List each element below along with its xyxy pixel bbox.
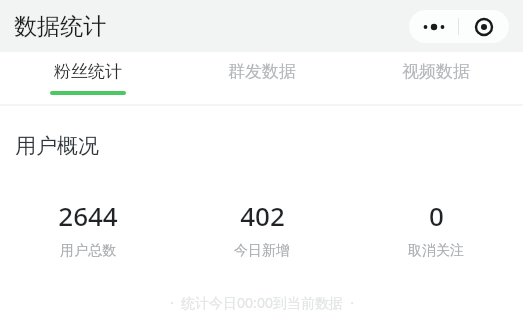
staticText: · 统计今日00:00到当前数据 ·: [170, 293, 354, 312]
button[interactable]: 0: [349, 198, 523, 260]
button[interactable]: 粉丝统计: [0, 52, 175, 104]
button[interactable]: 视频数据: [349, 52, 523, 104]
button[interactable]: 2644: [0, 198, 175, 260]
staticText: 群发数据: [228, 61, 296, 82]
staticText: 用户总数: [60, 242, 116, 260]
staticText: 今日新增: [234, 242, 290, 260]
staticText: 2644: [58, 198, 118, 233]
staticText: 视频数据: [402, 61, 470, 82]
staticText: 数据统计: [14, 12, 106, 41]
staticText: 粉丝统计: [54, 61, 122, 82]
staticText: 0: [429, 198, 444, 233]
button[interactable]: 402: [175, 198, 349, 260]
staticText: 用户概况: [15, 133, 99, 159]
button[interactable]: 群发数据: [175, 52, 349, 104]
button[interactable]: Close: [459, 10, 509, 43]
staticText: 取消关注: [408, 242, 464, 260]
button[interactable]: More: [409, 10, 458, 43]
staticText: 402: [240, 198, 285, 233]
